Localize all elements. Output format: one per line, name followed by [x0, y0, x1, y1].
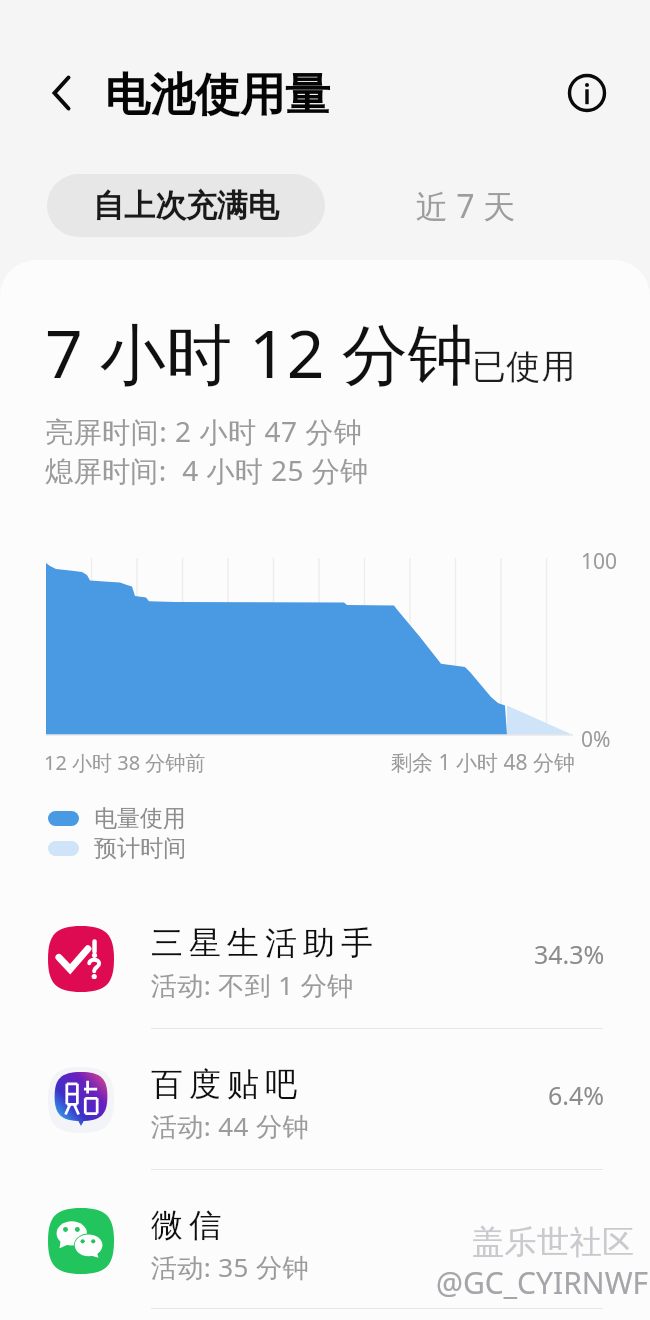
- staticText: 活动: 44 分钟: [151, 1108, 309, 1144]
- staticText: 100: [581, 547, 618, 576]
- button[interactable]: 近 7 天: [345, 174, 585, 237]
- staticText: 百度贴吧: [148, 1064, 300, 1104]
- button[interactable]: Information: [559, 65, 615, 121]
- staticText: 预计时间: [94, 834, 186, 863]
- staticText: 34.3%: [534, 937, 605, 971]
- staticText: 盖乐世社区: [472, 1222, 635, 1262]
- staticText: 活动: 35 分钟: [151, 1249, 309, 1285]
- staticText: 电量使用: [94, 804, 186, 833]
- button[interactable]: 微信: [0, 1172, 650, 1313]
- staticText: 0%: [581, 725, 611, 754]
- staticText: 电池使用量: [105, 67, 330, 124]
- staticText: 剩余 1 小时 48 分钟: [391, 748, 575, 777]
- staticText: 7 小时 12 分钟: [45, 307, 474, 397]
- button[interactable]: 三星生活助手: [0, 890, 650, 1031]
- staticText: 熄屏时间: 4 小时 25 分钟: [45, 451, 369, 489]
- staticText: 6.4%: [548, 1078, 605, 1112]
- staticText: 自上次充满电: [93, 186, 279, 225]
- staticText: 亮屏时间: 2 小时 47 分钟: [45, 412, 363, 450]
- staticText: 已使用: [472, 345, 576, 388]
- staticText: 12 小时 38 分钟前: [44, 749, 206, 776]
- button[interactable]: Back: [34, 65, 90, 121]
- staticText: 近 7 天: [416, 184, 515, 228]
- button[interactable]: 百度贴吧: [0, 1031, 650, 1172]
- staticText: 微信: [148, 1205, 224, 1245]
- staticText: 三星生活助手: [148, 923, 376, 963]
- button[interactable]: 自上次充满电: [47, 174, 325, 237]
- staticText: @GC_CYIRNWF: [436, 1262, 649, 1303]
- staticText: 活动: 不到 1 分钟: [151, 967, 354, 1003]
